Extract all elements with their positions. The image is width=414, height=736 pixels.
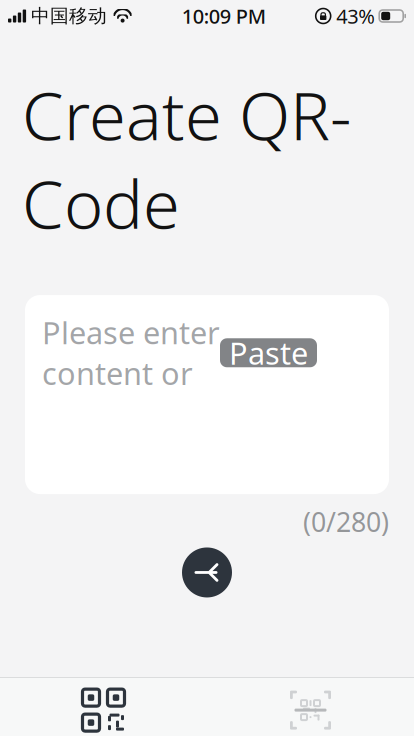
button[interactable]: Create QR code (0, 686, 207, 735)
staticText: Paste (229, 332, 308, 373)
button[interactable]: Scan QR code (207, 686, 414, 735)
staticText: (0/280) (303, 504, 389, 539)
staticText: 中国移动 (31, 4, 107, 27)
button[interactable]: Generate QR code (182, 547, 232, 597)
button[interactable]: Paste (220, 338, 317, 367)
button[interactable]: Please enter content or (25, 295, 389, 494)
staticText: 10:09 PM (182, 3, 266, 29)
staticText: Please enter content or (42, 312, 220, 393)
staticText: Create QR-Code (22, 70, 351, 247)
staticText: 43% (336, 3, 375, 29)
